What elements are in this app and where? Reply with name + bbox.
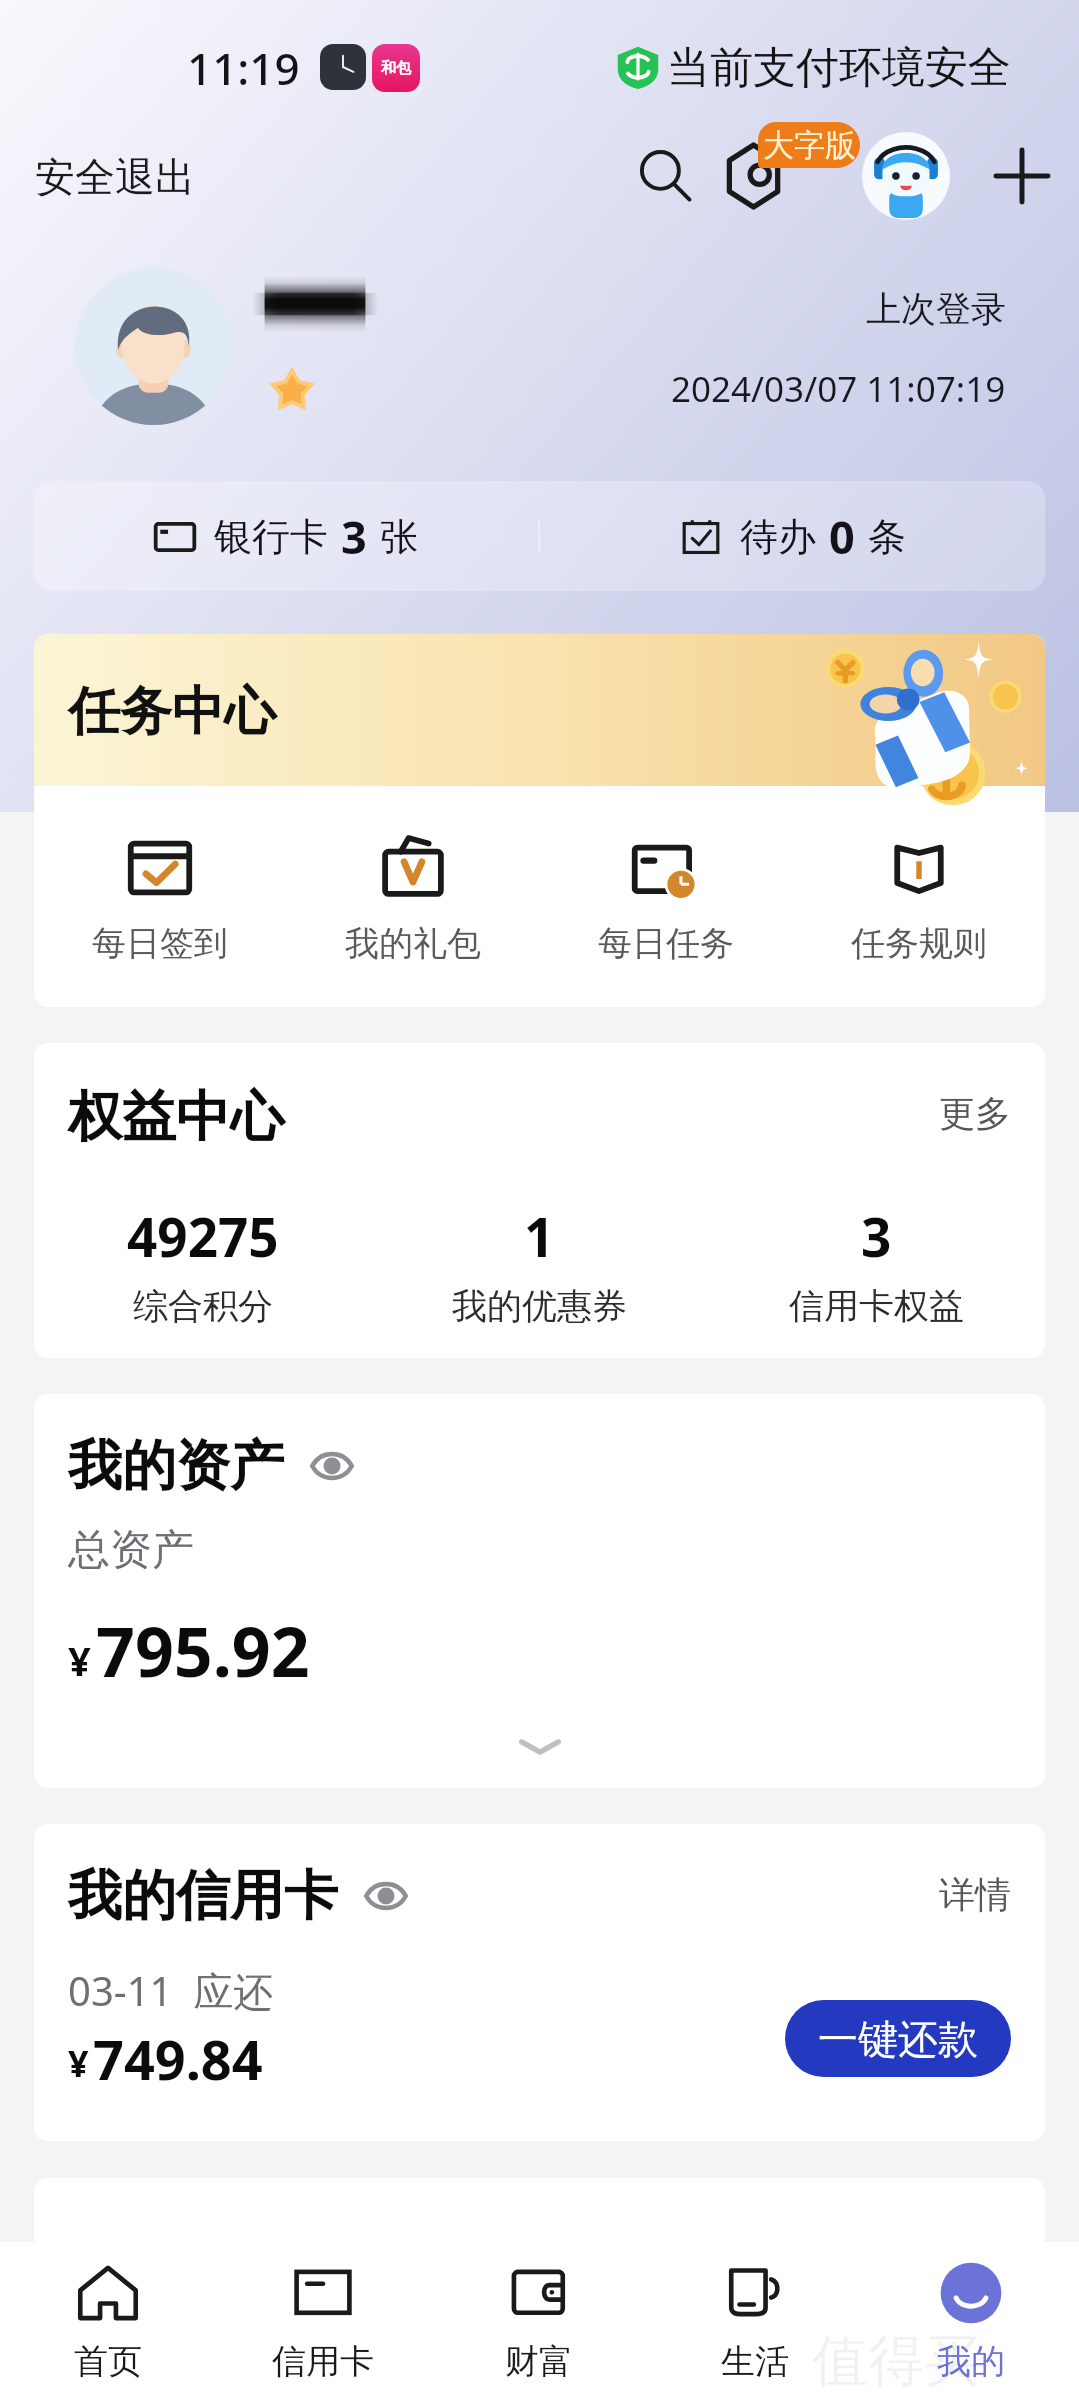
staticText: 0 [829, 506, 855, 567]
staticText: 1 [524, 1200, 555, 1272]
staticText: 我的优惠券 [452, 1284, 627, 1328]
staticText: 我的 [937, 2340, 1005, 2383]
staticText: 值得买 [812, 2326, 980, 2397]
staticText: 795.92 [96, 1604, 310, 1697]
button[interactable]: 首页 [0, 2260, 215, 2383]
staticText: 银行卡 [214, 513, 328, 561]
button[interactable]: Add [986, 140, 1058, 212]
staticText: 总资产 [68, 1524, 194, 1577]
staticText: 我的礼包 [345, 922, 481, 965]
button[interactable]: Scan [722, 142, 790, 210]
button[interactable]: 1 [371, 1200, 708, 1328]
button[interactable]: Toggle credit card visibility [360, 1870, 412, 1922]
staticText: ¥ [68, 1633, 91, 1687]
staticText: 条 [868, 513, 906, 561]
staticText: 首页 [74, 2340, 142, 2383]
staticText: 每日任务 [598, 922, 734, 965]
staticText: 详情 [939, 1872, 1011, 1917]
staticText: 上次登录 [866, 287, 1006, 331]
staticText: 张 [380, 513, 418, 561]
staticText: 当前支付环境安全 [667, 41, 1011, 95]
staticText: 任务中心 [68, 679, 276, 745]
staticText: 信用卡 [272, 2340, 374, 2383]
button[interactable]: Profile avatar [75, 268, 232, 425]
staticText: 信用卡权益 [789, 1284, 964, 1328]
staticText: 更多 [939, 1091, 1011, 1136]
button[interactable]: 49275 [34, 1200, 371, 1328]
button[interactable]: 任务规则 [792, 834, 1045, 965]
staticText: 生活 [721, 2340, 789, 2383]
staticText: 749.84 [93, 2022, 263, 2096]
button[interactable]: 信用卡 [215, 2260, 431, 2383]
staticText: 03-11 应还 [68, 1963, 274, 2018]
staticText: 3 [341, 506, 367, 567]
staticText: 和包 [381, 59, 411, 78]
button[interactable]: 详情 [939, 1872, 1011, 1917]
button[interactable]: 更多 [939, 1091, 1011, 1136]
button[interactable]: 一键还款 [785, 2000, 1011, 2077]
button[interactable]: 安全退出 [35, 152, 195, 202]
staticText: 财富 [505, 2340, 573, 2383]
button[interactable]: 银行卡 [34, 506, 538, 567]
button[interactable]: Customer service [862, 132, 950, 220]
staticText: 3 [861, 1200, 892, 1272]
button[interactable]: 任务中心 [34, 634, 1045, 786]
staticText: 大字版 [763, 126, 856, 165]
button[interactable]: Search [630, 140, 702, 212]
button[interactable]: 生活 [647, 2260, 863, 2383]
staticText: 权益中心 [68, 1083, 284, 1151]
button[interactable]: Toggle asset visibility [306, 1440, 358, 1492]
button[interactable]: 大字版 [758, 122, 860, 168]
staticText: 11:19 [187, 38, 300, 98]
button[interactable]: 待办 [540, 506, 1045, 567]
staticText: 我的资产 [68, 1432, 284, 1500]
staticText: 综合积分 [133, 1284, 273, 1328]
staticText: 任务规则 [851, 922, 987, 965]
button[interactable]: 我的 [863, 2260, 1079, 2383]
button[interactable]: 我的礼包 [286, 834, 539, 965]
button[interactable]: 3 [708, 1200, 1045, 1328]
staticText: 一键还款 [818, 2014, 978, 2064]
staticText: 2024/03/07 11:07:19 [671, 365, 1006, 413]
button[interactable]: 财富 [431, 2260, 647, 2383]
staticText: ¥ [68, 2039, 89, 2088]
staticText: 我的信用卡 [68, 1862, 338, 1930]
staticText: 49275 [127, 1200, 279, 1272]
button[interactable]: Expand assets [480, 1717, 600, 1777]
staticText: 每日签到 [92, 922, 228, 965]
button[interactable]: 每日任务 [539, 834, 792, 965]
staticText: 待办 [740, 513, 816, 561]
button[interactable]: 每日签到 [34, 834, 286, 965]
